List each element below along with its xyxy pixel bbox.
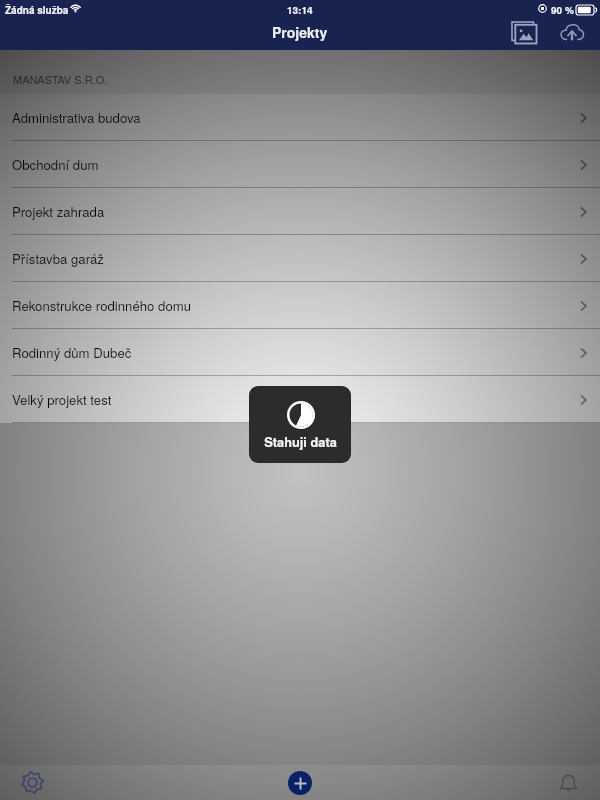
button[interactable]: Notifications xyxy=(536,765,600,800)
staticText: Projekty xyxy=(272,22,328,42)
button[interactable]: Přístavba garáž xyxy=(0,235,600,282)
staticText: 90 % xyxy=(551,3,574,17)
button[interactable]: Photos xyxy=(505,14,543,50)
button[interactable]: Settings xyxy=(0,765,64,800)
button[interactable]: Administrativa budova xyxy=(0,94,600,141)
staticText: Rekonstrukce rodinného domu xyxy=(12,296,576,315)
button[interactable]: Obchodní dum xyxy=(0,141,600,188)
staticText: Stahuji data xyxy=(264,433,337,451)
staticText: Žádná služba xyxy=(5,3,69,17)
button[interactable]: Add xyxy=(282,765,317,800)
staticText: Obchodní dum xyxy=(12,155,576,174)
staticText: Administrativa budova xyxy=(12,108,576,127)
button[interactable]: Rekonstrukce rodinného domu xyxy=(0,282,600,329)
staticText: 13:14 xyxy=(287,3,313,17)
staticText: Přístavba garáž xyxy=(12,249,576,268)
button[interactable]: Rodinný dům Dubeč xyxy=(0,329,600,376)
staticText: Projekt zahrada xyxy=(12,202,576,221)
staticText: MANASTAV S.R.O. xyxy=(13,71,108,87)
button[interactable]: Upload xyxy=(553,14,591,50)
staticText: Velký projekt test xyxy=(12,390,576,409)
staticText: Rodinný dům Dubeč xyxy=(12,343,576,362)
button[interactable]: Velký projekt test xyxy=(0,376,600,423)
button[interactable]: Projekt zahrada xyxy=(0,188,600,235)
